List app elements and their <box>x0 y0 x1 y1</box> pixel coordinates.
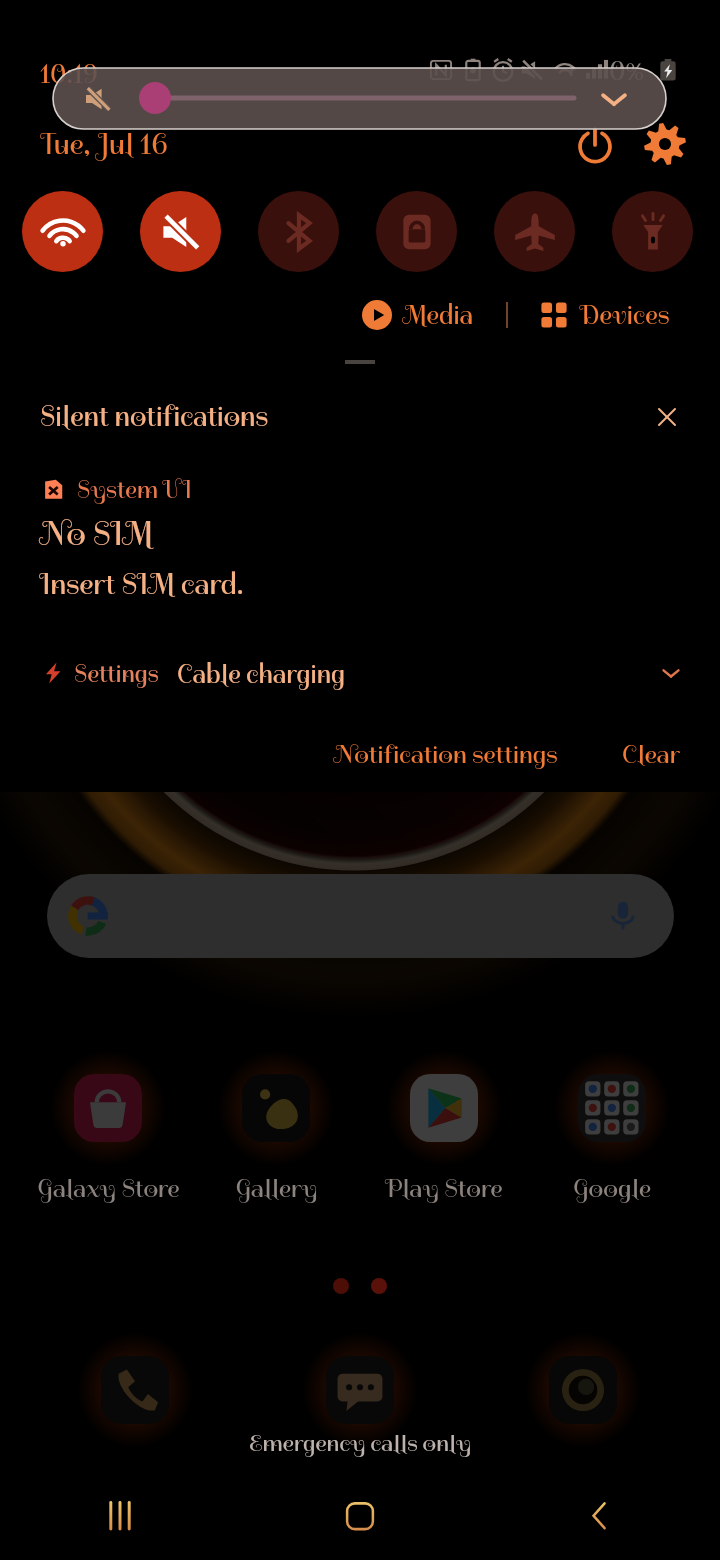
staticText: Tue, Jul 16 <box>40 126 168 163</box>
button[interactable]: Quick setting <box>612 191 693 272</box>
button[interactable]: Home <box>240 1478 480 1560</box>
button[interactable]: Google <box>528 1052 696 1200</box>
staticText: Play Store <box>385 1172 503 1204</box>
staticText: Devices <box>580 298 670 331</box>
button[interactable]: Volume <box>53 68 666 129</box>
button[interactable]: Gallery <box>192 1052 360 1200</box>
staticText: 0% <box>609 54 644 87</box>
button[interactable]: Media <box>356 292 480 337</box>
staticText: No SIM <box>40 513 154 555</box>
staticText: Clear <box>622 738 680 770</box>
staticText: Google <box>573 1172 651 1204</box>
staticText: Galaxy Store <box>37 1172 180 1204</box>
button[interactable]: Settings <box>640 122 690 166</box>
staticText: Silent notifications <box>40 399 269 435</box>
button[interactable]: Quick setting <box>140 191 221 272</box>
button[interactable]: Quick setting <box>376 191 457 272</box>
button[interactable]: Notification settings <box>324 730 568 778</box>
button[interactable]: Expand <box>654 656 688 690</box>
staticText: 10:19 <box>40 57 98 90</box>
button[interactable]: Back <box>480 1478 720 1560</box>
staticText: Gallery <box>235 1172 318 1204</box>
button[interactable]: Quick setting <box>258 191 339 272</box>
button[interactable]: Phone <box>77 1332 193 1448</box>
button[interactable]: Play Store <box>360 1052 528 1200</box>
staticText: Insert SIM card. <box>40 566 244 603</box>
button[interactable]: Recents <box>0 1478 240 1560</box>
button[interactable]: Galaxy Store <box>24 1052 192 1200</box>
staticText: System UI <box>77 474 192 505</box>
staticText: Settings <box>74 658 159 689</box>
staticText: Cable charging <box>177 657 346 690</box>
staticText: Emergency calls only <box>249 1428 472 1458</box>
button[interactable]: Clear <box>612 730 690 778</box>
staticText: Media <box>403 298 474 331</box>
button[interactable]: Camera <box>525 1332 641 1448</box>
staticText: Notification settings <box>334 738 558 770</box>
button[interactable]: Devices <box>534 292 676 337</box>
button[interactable]: Power off <box>568 122 622 166</box>
button[interactable]: Quick setting <box>22 191 103 272</box>
button[interactable]: Dismiss all <box>646 396 688 438</box>
button[interactable]: Messages <box>302 1332 418 1448</box>
button[interactable]: Search <box>47 874 674 958</box>
button[interactable]: Quick setting <box>494 191 575 272</box>
